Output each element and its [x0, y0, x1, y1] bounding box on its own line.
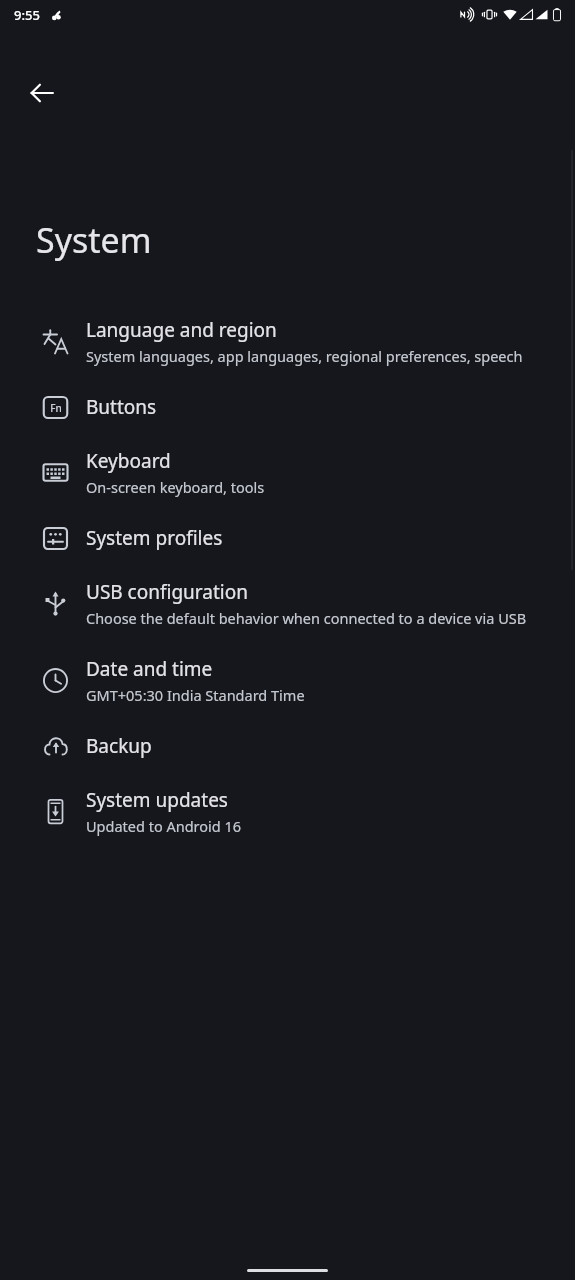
staticText: Buttons — [86, 394, 157, 420]
button[interactable]: USB configuration — [0, 565, 575, 642]
staticText: Date and time — [86, 656, 213, 682]
staticText: GMT+05:30 India Standard Time — [86, 685, 305, 705]
button[interactable]: System updates — [0, 773, 575, 850]
staticText: System updates — [86, 787, 228, 813]
staticText: USB configuration — [86, 579, 248, 605]
staticText: System profiles — [86, 525, 223, 551]
staticText: Backup — [86, 733, 152, 759]
button[interactable]: Language and region — [0, 303, 575, 380]
staticText: 9:55 — [14, 6, 40, 24]
button[interactable]: Backup — [0, 719, 575, 773]
staticText: Language and region — [86, 317, 277, 343]
staticText: System languages, app languages, regiona… — [86, 346, 523, 366]
button[interactable]: Date and time — [0, 642, 575, 719]
staticText: Fn — [50, 401, 62, 415]
button[interactable]: Fn — [0, 380, 575, 434]
staticText: Keyboard — [86, 448, 171, 474]
button[interactable]: Keyboard — [0, 434, 575, 511]
button[interactable]: System profiles — [0, 511, 575, 565]
staticText: System — [36, 217, 152, 263]
staticText: Choose the default behavior when connect… — [86, 608, 527, 628]
button[interactable]: Back — [10, 61, 74, 125]
staticText: Updated to Android 16 — [86, 816, 242, 836]
staticText: On-screen keyboard, tools — [86, 477, 265, 497]
